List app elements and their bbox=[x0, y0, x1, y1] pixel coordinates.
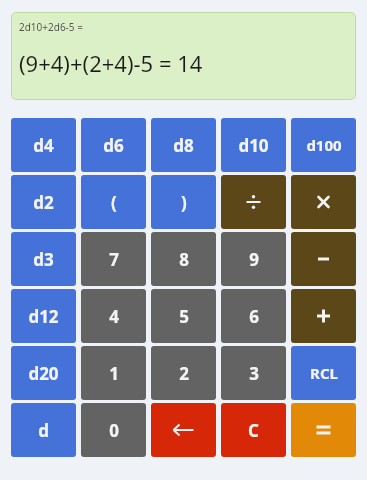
staticText: d2 bbox=[33, 191, 54, 214]
button[interactable]: 7 bbox=[81, 232, 146, 286]
staticText: 6 bbox=[249, 305, 259, 328]
staticText: d10 bbox=[238, 134, 269, 157]
staticText: ) bbox=[181, 191, 187, 214]
staticText: d12 bbox=[28, 305, 59, 328]
button[interactable]: d2 bbox=[11, 175, 76, 229]
staticText: (9+4)+(2+4)-5 = 14 bbox=[19, 48, 203, 78]
button[interactable]: Backspace bbox=[151, 403, 216, 457]
staticText: 2d10+2d6-5 = bbox=[19, 20, 83, 34]
button[interactable]: d10 bbox=[221, 118, 286, 172]
staticText: 1 bbox=[109, 362, 119, 385]
staticText: 7 bbox=[109, 248, 119, 271]
staticText: d6 bbox=[103, 134, 124, 157]
button[interactable]: C bbox=[221, 403, 286, 457]
button[interactable]: d4 bbox=[11, 118, 76, 172]
staticText: ( bbox=[111, 191, 117, 214]
button[interactable]: 5 bbox=[151, 289, 216, 343]
button[interactable]: 8 bbox=[151, 232, 216, 286]
button[interactable]: 1 bbox=[81, 346, 146, 400]
button[interactable]: 4 bbox=[81, 289, 146, 343]
button[interactable]: Minus bbox=[291, 232, 356, 286]
button[interactable]: 6 bbox=[221, 289, 286, 343]
staticText: C bbox=[248, 419, 259, 442]
button[interactable]: ( bbox=[81, 175, 146, 229]
button[interactable]: 2 bbox=[151, 346, 216, 400]
button[interactable]: Equals bbox=[291, 403, 356, 457]
staticText: d4 bbox=[33, 134, 54, 157]
staticText: 8 bbox=[179, 248, 189, 271]
staticText: RCL bbox=[310, 363, 338, 383]
button[interactable]: Multiply bbox=[291, 175, 356, 229]
staticText: d bbox=[38, 419, 49, 442]
staticText: 9 bbox=[249, 248, 259, 271]
staticText: 4 bbox=[109, 305, 119, 328]
button[interactable]: d3 bbox=[11, 232, 76, 286]
staticText: d3 bbox=[33, 248, 54, 271]
staticText: 3 bbox=[249, 362, 259, 385]
button[interactable]: 0 bbox=[81, 403, 146, 457]
button[interactable]: d6 bbox=[81, 118, 146, 172]
button[interactable]: 3 bbox=[221, 346, 286, 400]
button[interactable]: Divide bbox=[221, 175, 286, 229]
staticText: d20 bbox=[28, 362, 59, 385]
staticText: 5 bbox=[179, 305, 189, 328]
staticText: d8 bbox=[173, 134, 194, 157]
button[interactable]: d bbox=[11, 403, 76, 457]
button[interactable]: Plus bbox=[291, 289, 356, 343]
staticText: 2 bbox=[179, 362, 189, 385]
button[interactable]: 9 bbox=[221, 232, 286, 286]
button[interactable]: d20 bbox=[11, 346, 76, 400]
staticText: 0 bbox=[109, 419, 119, 442]
staticText: d100 bbox=[306, 135, 342, 155]
button[interactable]: ) bbox=[151, 175, 216, 229]
button[interactable]: d100 bbox=[291, 118, 356, 172]
button[interactable]: d12 bbox=[11, 289, 76, 343]
button[interactable]: RCL bbox=[291, 346, 356, 400]
button[interactable]: d8 bbox=[151, 118, 216, 172]
